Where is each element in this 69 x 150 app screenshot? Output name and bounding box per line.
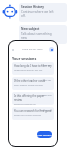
button[interactable]: New subject [19,25,67,44]
button[interactable]: New session [37,131,52,138]
button[interactable]: How long do I have to filter my [12,62,54,75]
button[interactable]: Profile [49,47,54,52]
staticText: 2 weeks ago [40,109,52,112]
staticText: Session History [21,5,44,9]
button[interactable]: Is this offering the paper review [12,92,54,105]
staticText: New session [37,133,52,136]
staticText: Talk about something [21,32,52,36]
staticText: How long do I have to filter my [14,64,52,68]
staticText: 2 days ago [41,64,52,67]
staticText: 1 week ago [41,94,52,97]
staticText: previous sessions list [14,103,36,105]
staticText: Continue where we left [21,10,54,14]
staticText: basic objects review content [14,84,43,87]
button[interactable]: You can research for find good [12,107,54,120]
staticText: If the other teacher could [14,79,46,83]
button[interactable]: If the other teacher could [12,77,54,90]
staticText: guide the current sessions [14,114,42,117]
staticText: 5 days ago [41,79,52,82]
staticText: Could ask for them [22,48,43,51]
staticText: New subject [21,27,40,31]
staticText: Is this offering the paper review [14,94,52,102]
staticText: off. [21,14,26,18]
staticText: new [21,36,27,40]
staticText: Your sessions [12,56,37,61]
staticText: understand where I left last [14,69,43,72]
staticText: You can research for find good [14,109,52,113]
button[interactable]: Session History [19,3,67,22]
other: Assistant [2,4,17,20]
